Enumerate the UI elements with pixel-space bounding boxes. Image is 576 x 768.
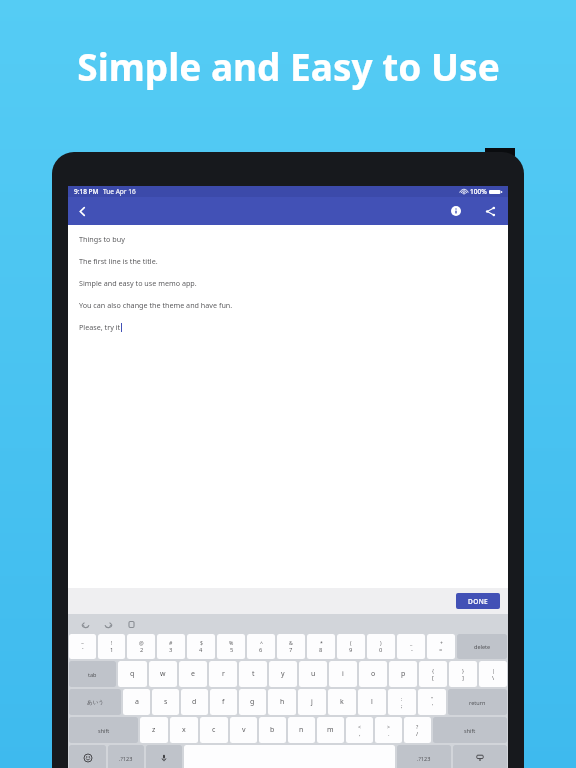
staticText: 1 (110, 646, 114, 654)
staticText: .?123 (417, 755, 431, 762)
button[interactable]: delete (457, 634, 507, 659)
staticText: delete (474, 643, 491, 650)
button[interactable]: shift (69, 717, 138, 743)
button[interactable]: u (299, 661, 327, 687)
button[interactable]: Hide keyboard (453, 745, 507, 768)
button[interactable]: { (419, 661, 447, 687)
button[interactable]: y (269, 661, 297, 687)
staticText: % (229, 639, 234, 646)
button[interactable]: n (288, 717, 315, 743)
staticText: d (192, 697, 197, 707)
staticText: 6 (259, 646, 263, 654)
button[interactable]: i (329, 661, 357, 687)
button[interactable]: z (140, 717, 168, 743)
button[interactable]: > (375, 717, 402, 743)
button[interactable]: v (230, 717, 257, 743)
staticText: & (289, 639, 293, 646)
staticText: - (411, 646, 413, 654)
button[interactable]: _ (397, 634, 425, 659)
staticText: 8 (319, 646, 323, 654)
button[interactable]: .?123 (397, 745, 451, 768)
staticText: ~ (81, 639, 84, 646)
staticText: s (164, 697, 168, 707)
staticText: 3 (169, 646, 173, 654)
button[interactable]: h (268, 689, 296, 715)
button[interactable]: r (209, 661, 237, 687)
button[interactable]: Voice input (146, 745, 182, 768)
button[interactable]: Redo (99, 615, 117, 633)
button[interactable]: DONE (456, 593, 500, 609)
button[interactable]: @ (127, 634, 155, 659)
button[interactable]: ) (367, 634, 395, 659)
button[interactable]: } (449, 661, 477, 687)
button[interactable]: # (157, 634, 185, 659)
staticText: v (242, 725, 246, 735)
staticText: a (135, 697, 139, 707)
button[interactable]: l (358, 689, 386, 715)
button[interactable]: ? (404, 717, 431, 743)
button[interactable]: ( (337, 634, 365, 659)
button[interactable]: Back (68, 197, 96, 225)
button[interactable]: " (418, 689, 446, 715)
staticText: tab (88, 671, 97, 678)
staticText: 5 (230, 646, 234, 654)
button[interactable]: e (179, 661, 207, 687)
staticText: c (212, 725, 216, 735)
button[interactable]: : (388, 689, 416, 715)
button[interactable]: c (200, 717, 228, 743)
button[interactable]: tab (69, 661, 116, 687)
button[interactable]: b (259, 717, 286, 743)
button[interactable]: p (389, 661, 417, 687)
staticText: .?123 (119, 755, 133, 762)
button[interactable]: g (239, 689, 266, 715)
staticText: 0 (379, 646, 383, 654)
button[interactable]: shift (433, 717, 507, 743)
button[interactable]: & (277, 634, 305, 659)
button[interactable]: Info (442, 197, 470, 225)
button[interactable]: k (328, 689, 356, 715)
staticText: 9:18 PM (74, 187, 99, 196)
button[interactable]: + (427, 634, 455, 659)
staticText: o (371, 669, 376, 679)
staticText: shift (98, 727, 110, 734)
button[interactable]: w (149, 661, 177, 687)
button[interactable]: Paste (122, 615, 140, 633)
button[interactable]: ~ (69, 634, 96, 659)
button[interactable]: あいう (69, 689, 121, 715)
button[interactable]: < (346, 717, 373, 743)
staticText: ; (401, 702, 403, 710)
button[interactable]: j (298, 689, 326, 715)
staticText: e (191, 669, 195, 679)
button[interactable]: ! (98, 634, 125, 659)
staticText: t (252, 669, 255, 679)
button[interactable]: a (123, 689, 150, 715)
button[interactable]: t (239, 661, 267, 687)
button[interactable]: o (359, 661, 387, 687)
staticText: 7 (289, 646, 293, 654)
button[interactable]: % (217, 634, 245, 659)
button[interactable]: s (152, 689, 179, 715)
button[interactable]: return (448, 689, 507, 715)
staticText: $ (200, 639, 203, 646)
staticText: w (160, 669, 166, 679)
staticText: + (440, 639, 443, 646)
staticText: r (222, 669, 225, 679)
button[interactable]: q (118, 661, 147, 687)
button[interactable]: x (170, 717, 198, 743)
button[interactable]: Undo (76, 615, 94, 633)
button[interactable]: d (181, 689, 208, 715)
button[interactable]: | (479, 661, 507, 687)
button[interactable]: Emoji (69, 745, 106, 768)
staticText: ' (432, 702, 434, 710)
button[interactable]: f (210, 689, 237, 715)
button[interactable]: ^ (247, 634, 275, 659)
staticText: Simple and easy to use memo app. (79, 278, 197, 288)
button[interactable]: $ (187, 634, 215, 659)
button[interactable]: m (317, 717, 344, 743)
button[interactable]: .?123 (108, 745, 144, 768)
staticText: あいう (87, 699, 104, 706)
button[interactable]: Share (476, 197, 504, 225)
button[interactable]: * (307, 634, 335, 659)
staticText: } (462, 667, 464, 674)
